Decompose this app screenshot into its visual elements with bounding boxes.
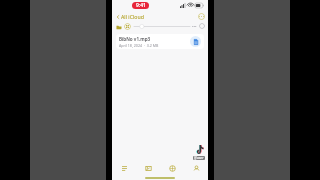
button[interactable]: Shared: [136, 162, 160, 175]
button[interactable]: Open file: [190, 36, 201, 47]
staticText: 9:41: [136, 2, 146, 9]
staticText: •••: [192, 24, 197, 29]
button[interactable]: Profile: [184, 162, 208, 175]
button[interactable]: Recents: [112, 162, 136, 175]
button[interactable]: View options: [124, 23, 131, 30]
staticText: April 18, 2024 · 3.2 MB: [119, 43, 159, 48]
staticText: @user: [194, 156, 204, 160]
button[interactable]: All iCloud: [115, 12, 145, 21]
staticText: All iCloud: [121, 13, 144, 20]
button[interactable]: Sort: [199, 23, 205, 29]
button[interactable]: Browse: [160, 162, 184, 175]
button[interactable]: More options: [198, 13, 205, 20]
button[interactable]: BibNo v1.mp3: [116, 34, 204, 49]
button[interactable]: New folder: [115, 23, 122, 30]
staticText: BibNo v1.mp3: [119, 36, 151, 42]
